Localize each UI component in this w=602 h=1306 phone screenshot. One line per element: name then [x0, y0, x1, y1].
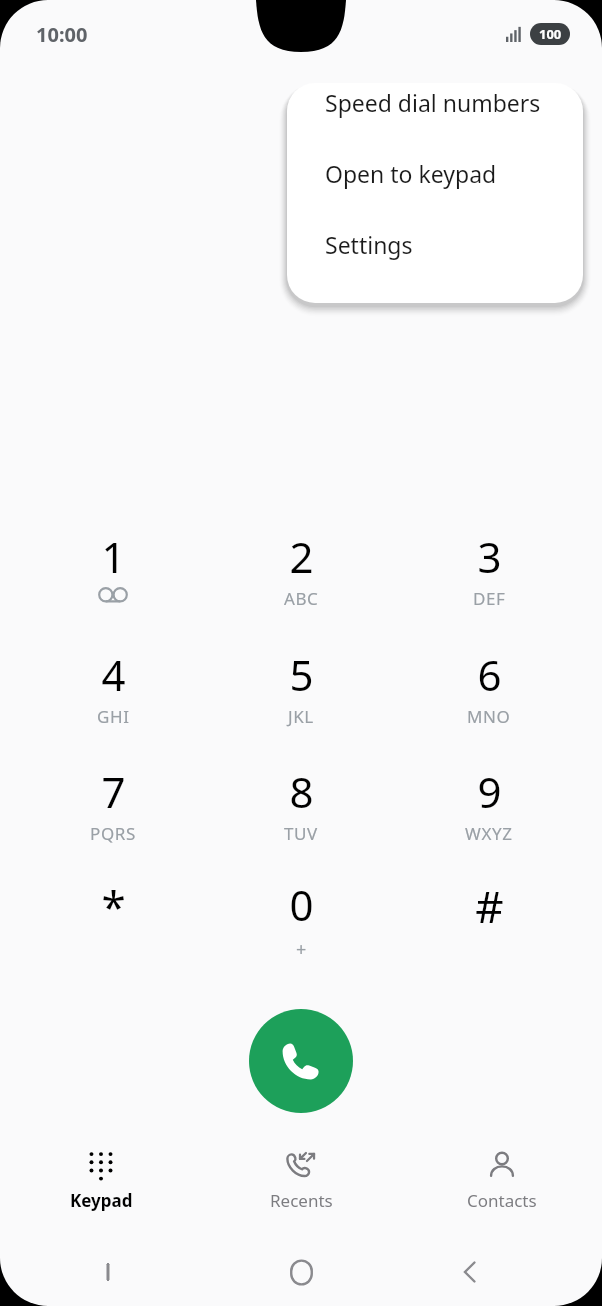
- staticText: Contacts: [467, 1189, 537, 1212]
- button[interactable]: Recents: [201, 1140, 401, 1220]
- staticText: WXYZ: [465, 822, 513, 845]
- button[interactable]: 8: [226, 763, 376, 863]
- staticText: #: [475, 876, 504, 936]
- button[interactable]: Call: [249, 1009, 353, 1113]
- staticText: GHI: [97, 705, 130, 728]
- button[interactable]: 6: [414, 646, 564, 746]
- staticText: 0: [289, 876, 314, 933]
- button[interactable]: 2: [226, 528, 376, 628]
- staticText: 100: [539, 25, 562, 43]
- button[interactable]: 4: [38, 646, 188, 746]
- staticText: 3: [477, 528, 502, 585]
- staticText: 9: [477, 763, 502, 820]
- staticText: PQRS: [90, 822, 136, 845]
- staticText: Settings: [325, 229, 413, 260]
- other: Keypad: [84, 1148, 118, 1182]
- other: Contacts: [485, 1148, 519, 1182]
- staticText: *: [101, 876, 126, 936]
- staticText: Keypad: [70, 1189, 133, 1212]
- button[interactable]: Open to keypad: [287, 124, 583, 195]
- button[interactable]: 3: [414, 528, 564, 628]
- other: Recents: [284, 1148, 318, 1182]
- staticText: 6: [477, 646, 502, 703]
- button[interactable]: 9: [414, 763, 564, 863]
- button[interactable]: Contacts: [402, 1140, 602, 1220]
- button[interactable]: Speed dial numbers: [287, 83, 583, 124]
- staticText: JKL: [288, 705, 314, 728]
- button[interactable]: Home: [261, 1238, 341, 1306]
- staticText: MNO: [467, 705, 511, 728]
- staticText: 5: [289, 646, 314, 703]
- button[interactable]: 5: [226, 646, 376, 746]
- staticText: DEF: [473, 587, 506, 610]
- staticText: 4: [101, 646, 126, 703]
- staticText: 2: [289, 528, 314, 585]
- staticText: Recents: [270, 1189, 333, 1212]
- button[interactable]: #: [414, 876, 564, 976]
- button[interactable]: 1: [38, 528, 188, 628]
- button[interactable]: Back: [430, 1238, 510, 1306]
- staticText: TUV: [284, 822, 318, 845]
- staticText: +: [296, 937, 307, 962]
- staticText: Speed dial numbers: [325, 87, 541, 118]
- staticText: 10:00: [36, 21, 88, 48]
- staticText: ABC: [284, 587, 319, 610]
- button[interactable]: 0: [226, 876, 376, 976]
- staticText: 1: [101, 528, 126, 585]
- button[interactable]: *: [38, 876, 188, 976]
- button[interactable]: Settings: [287, 195, 583, 266]
- button[interactable]: Keypad: [1, 1140, 201, 1220]
- staticText: Open to keypad: [325, 158, 497, 189]
- staticText: 7: [101, 763, 126, 820]
- button[interactable]: 7: [38, 763, 188, 863]
- staticText: 8: [289, 763, 314, 820]
